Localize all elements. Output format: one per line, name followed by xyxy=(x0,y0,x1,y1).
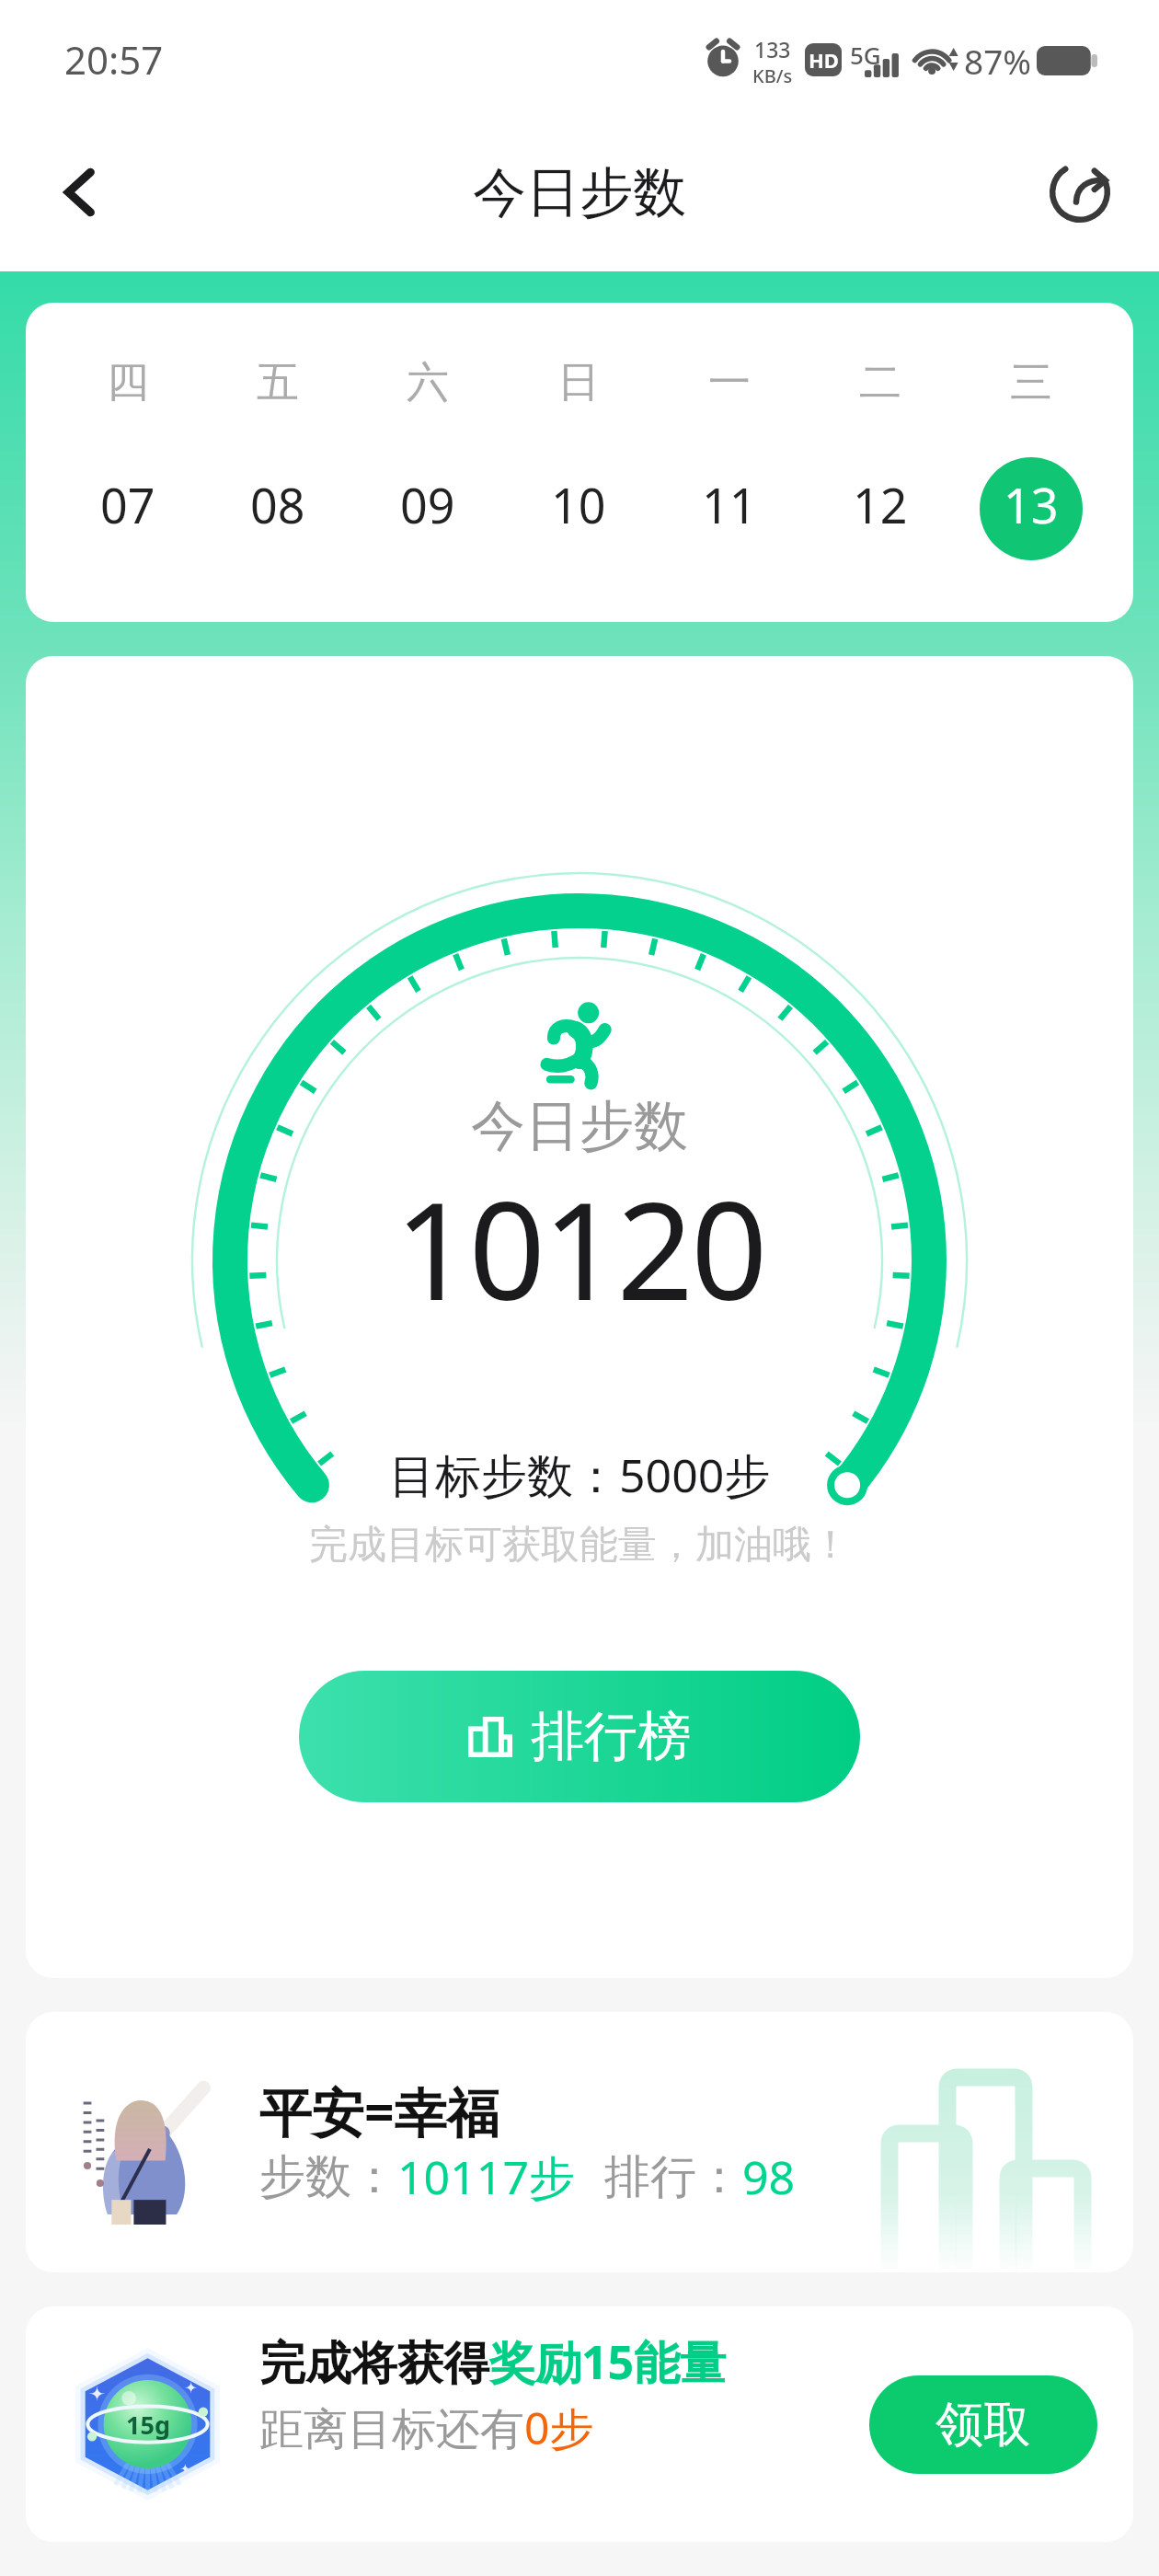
staticText: 10120 xyxy=(395,1156,765,1340)
staticText: 今日步数 xyxy=(473,159,686,226)
button[interactable]: 领取 xyxy=(869,2375,1097,2474)
staticText: 步数： xyxy=(259,2148,397,2206)
staticText: 距离目标还有0步 xyxy=(259,2398,594,2458)
button[interactable]: Refresh xyxy=(1036,148,1124,236)
button[interactable]: 日 xyxy=(503,303,654,622)
staticText: 二 xyxy=(859,356,901,409)
staticText: 5G xyxy=(850,39,881,71)
button[interactable]: 排行榜 xyxy=(299,1671,860,1802)
staticText: 日 xyxy=(557,356,600,409)
staticText: 一 xyxy=(708,356,751,409)
staticText: 四 xyxy=(107,356,149,409)
button[interactable]: 三 xyxy=(956,303,1107,622)
staticText: 15g xyxy=(126,2408,170,2442)
button[interactable]: Back xyxy=(37,148,125,236)
staticText: 20:57 xyxy=(64,33,164,86)
staticText: 今日步数 xyxy=(471,1092,688,1160)
button[interactable]: 平安=幸福 xyxy=(26,2012,1133,2272)
staticText: 08 xyxy=(250,472,305,537)
staticText: 目标步数：5000步 xyxy=(389,1443,771,1506)
staticText: 六 xyxy=(407,356,449,409)
button[interactable]: 六 xyxy=(352,303,503,622)
button[interactable]: 五 xyxy=(202,303,352,622)
staticText: 五 xyxy=(257,356,299,409)
staticText: HD xyxy=(809,46,839,74)
button[interactable]: 二 xyxy=(805,303,956,622)
staticText: 完成将获得奖励15能量 xyxy=(259,2330,727,2393)
staticText: 13 xyxy=(1004,472,1059,537)
staticText: 09 xyxy=(400,472,455,537)
button[interactable]: 四 xyxy=(52,303,202,622)
staticText: 07 xyxy=(100,472,155,537)
staticText: 平安=幸福 xyxy=(259,2076,499,2147)
staticText: 完成目标可获取能量，加油哦！ xyxy=(309,1521,850,1570)
staticText: KB/s xyxy=(752,63,793,88)
staticText: 98 xyxy=(742,2145,796,2208)
staticText: 11 xyxy=(702,472,757,537)
staticText: 三 xyxy=(1010,356,1052,409)
staticText: 87% xyxy=(964,38,1032,84)
staticText: 10117步 xyxy=(397,2145,575,2208)
staticText: 12 xyxy=(853,472,908,537)
staticText: 133 xyxy=(754,35,791,63)
staticText: 排行榜 xyxy=(531,1703,691,1770)
button[interactable]: 一 xyxy=(654,303,805,622)
staticText: 10 xyxy=(551,472,606,537)
staticText: 排行： xyxy=(604,2148,742,2206)
staticText: 领取 xyxy=(935,2395,1031,2455)
